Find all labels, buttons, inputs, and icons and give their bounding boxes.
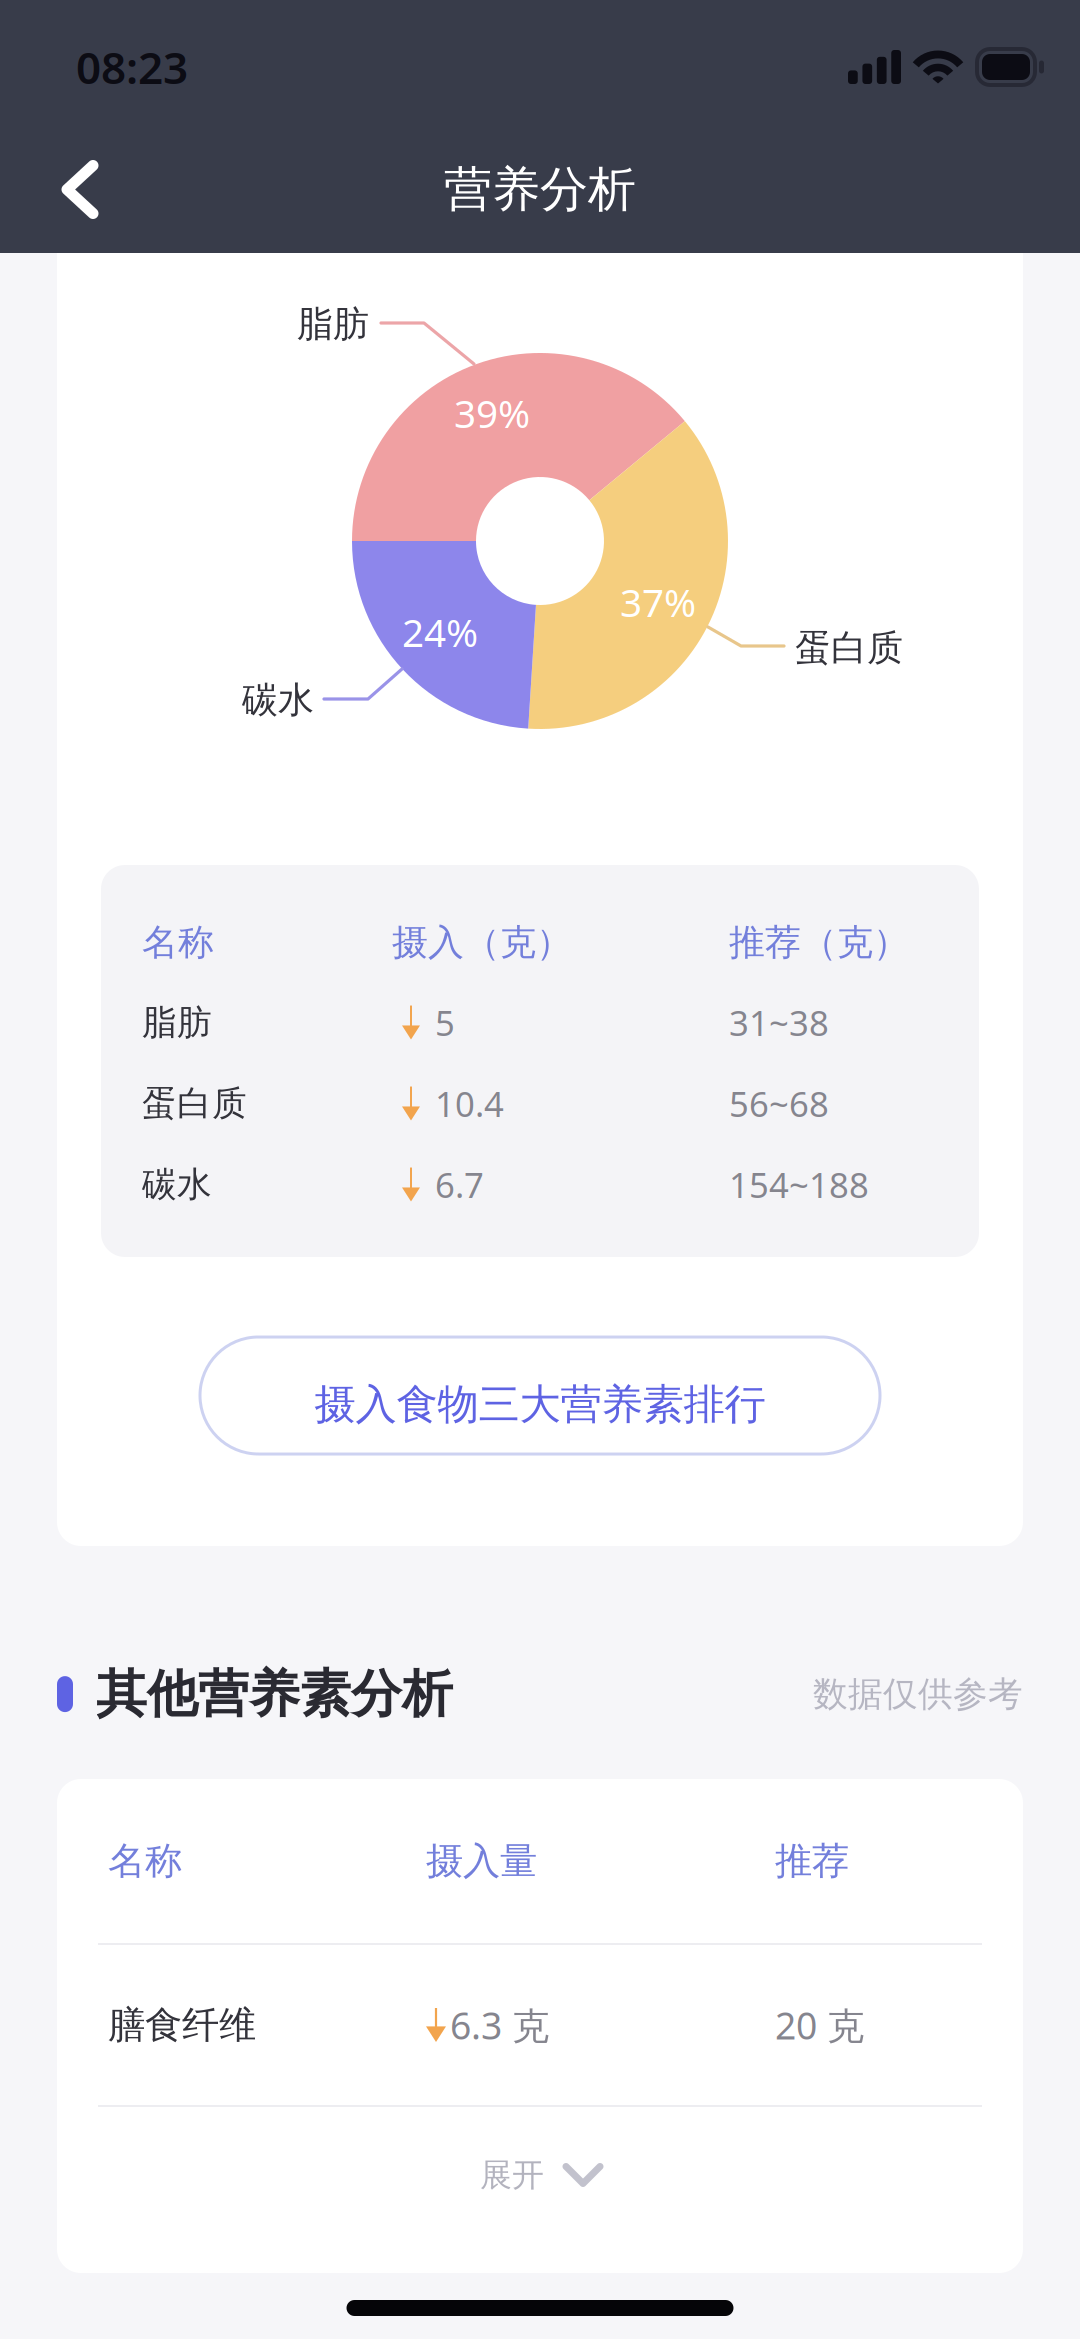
button[interactable]: 摄入食物三大营养素排行 <box>57 1337 1023 1454</box>
staticText: 31~38 <box>729 999 829 1045</box>
staticText: 推荐 <box>775 1838 849 1884</box>
staticText: 推荐（克） <box>729 920 909 965</box>
staticText: 154~188 <box>729 1161 869 1207</box>
staticText: 脂肪 <box>142 1001 212 1044</box>
staticText: 37% <box>620 576 696 628</box>
staticText: 摄入量 <box>426 1838 537 1884</box>
staticText: 蛋白质 <box>795 626 903 670</box>
staticText: 5 <box>435 999 455 1045</box>
staticText: 膳食纤维 <box>108 2002 256 2048</box>
button[interactable]: Back <box>0 112 133 253</box>
staticText: 摄入（克） <box>392 920 572 965</box>
staticText: 6.7 <box>435 1161 484 1207</box>
staticText: 10.4 <box>435 1080 504 1126</box>
staticText: 营养分析 <box>444 160 636 219</box>
staticText: 展开 <box>480 2155 544 2195</box>
staticText: 碳水 <box>142 1163 212 1206</box>
staticText: 脂肪 <box>297 302 369 346</box>
button[interactable]: 展开 <box>57 2107 1023 2243</box>
staticText: 摄入食物三大营养素排行 <box>314 1379 765 1430</box>
staticText: 24% <box>402 606 478 658</box>
staticText: 名称 <box>142 920 214 965</box>
staticText: 39% <box>454 387 530 439</box>
staticText: 碳水 <box>242 678 314 722</box>
staticText: 6.3 克 <box>450 2000 549 2050</box>
staticText: 20 克 <box>775 2000 864 2050</box>
staticText: 数据仅供参考 <box>813 1673 1023 1715</box>
staticText: 蛋白质 <box>142 1082 247 1125</box>
staticText: 56~68 <box>729 1080 829 1126</box>
staticText: 其他营养素分析 <box>96 1663 453 1725</box>
staticText: 名称 <box>108 1838 182 1884</box>
staticText: 08:23 <box>76 38 188 96</box>
